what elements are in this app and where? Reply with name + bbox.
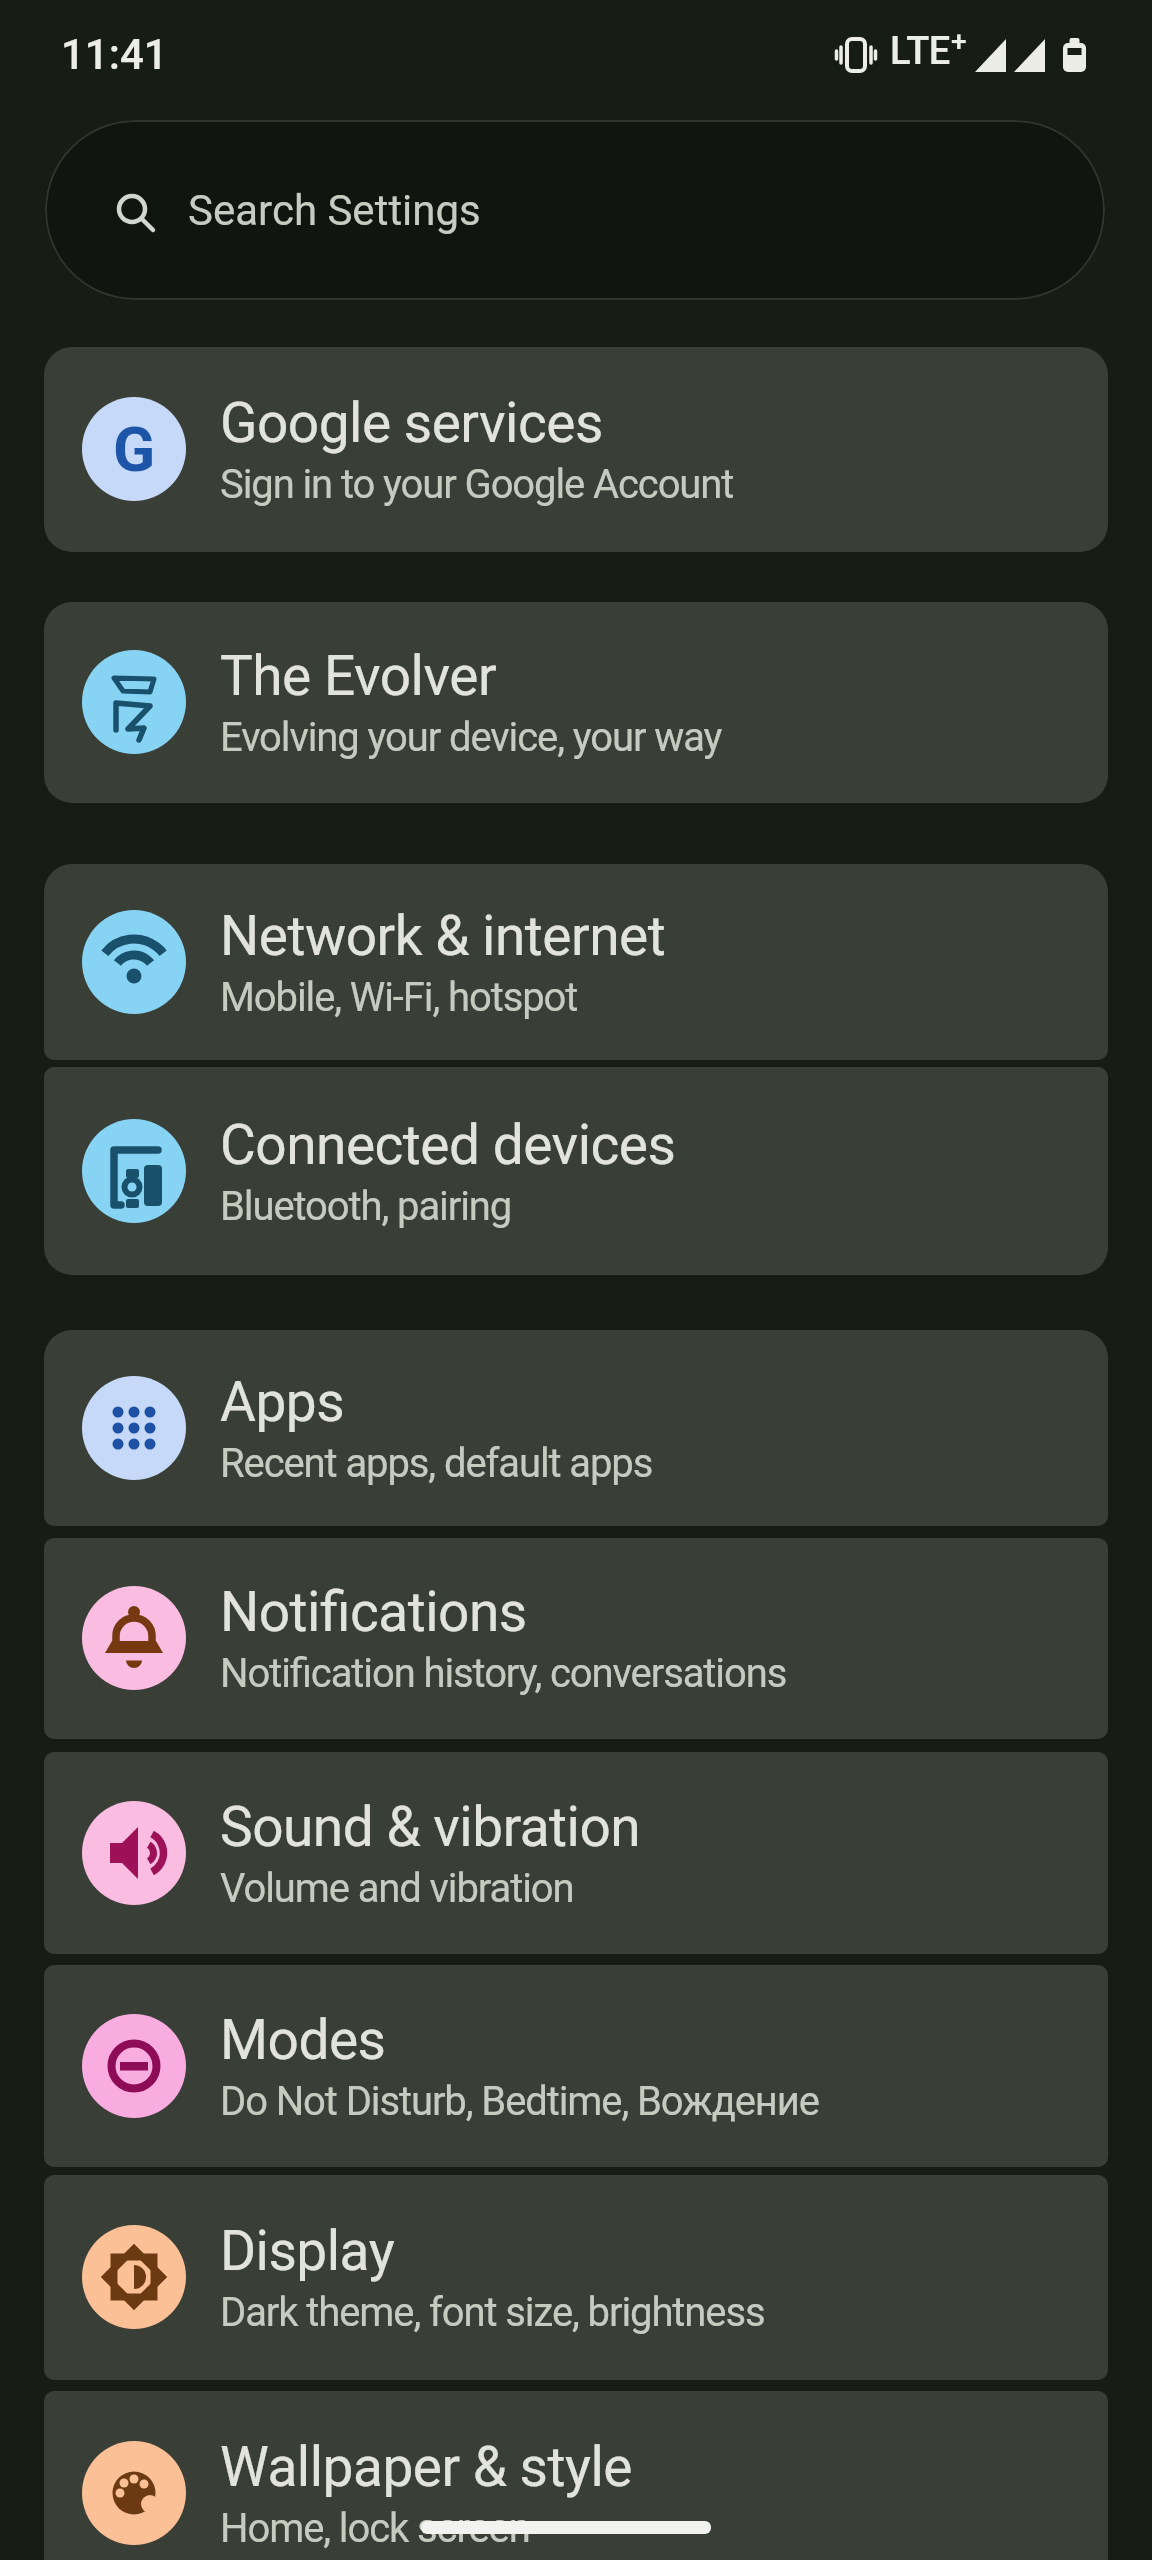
- button[interactable]: Sound & vibration: [44, 1752, 1108, 1954]
- button[interactable]: Network & internet: [44, 864, 1108, 1060]
- button[interactable]: [421, 2521, 711, 2534]
- staticText: Volume and vibration: [220, 1865, 574, 1912]
- button[interactable]: Search Settings: [45, 120, 1105, 300]
- button[interactable]: Connected devices: [44, 1067, 1108, 1275]
- staticText: The Evolver: [220, 644, 497, 708]
- staticText: Google services: [220, 391, 603, 455]
- staticText: Modes: [220, 2008, 386, 2072]
- staticText: Notification history, conversations: [220, 1650, 787, 1697]
- staticText: Display: [220, 2219, 395, 2283]
- staticText: Dark theme, font size, brightness: [220, 2289, 765, 2336]
- staticText: Mobile, Wi-Fi, hotspot: [220, 974, 578, 1021]
- staticText: Connected devices: [220, 1113, 676, 1177]
- staticText: 11:41: [61, 30, 168, 79]
- staticText: Notifications: [220, 1580, 527, 1644]
- staticText: G: [113, 413, 156, 486]
- button[interactable]: Apps: [44, 1330, 1108, 1526]
- staticText: Network & internet: [220, 904, 666, 968]
- button[interactable]: Wallpaper & style: [44, 2391, 1108, 2560]
- button[interactable]: Notifications: [44, 1538, 1108, 1739]
- staticText: Sign in to your Google Account: [220, 461, 734, 508]
- staticText: Recent apps, default apps: [220, 1440, 653, 1487]
- staticText: Bluetooth, pairing: [220, 1183, 512, 1230]
- button[interactable]: G: [44, 347, 1108, 552]
- staticText: Wallpaper & style: [220, 2435, 633, 2499]
- button[interactable]: The Evolver: [44, 602, 1108, 803]
- button[interactable]: Display: [44, 2175, 1108, 2380]
- staticText: Search Settings: [188, 186, 481, 235]
- staticText: Apps: [220, 1370, 345, 1434]
- staticText: Sound & vibration: [220, 1795, 641, 1859]
- staticText: LTE: [890, 29, 950, 74]
- staticText: Evolving your device, your way: [220, 714, 722, 761]
- button[interactable]: Modes: [44, 1965, 1108, 2167]
- staticText: +: [951, 25, 967, 58]
- staticText: Home, lock screen: [220, 2505, 530, 2552]
- staticText: Do Not Disturb, Bedtime, Вождение: [220, 2078, 819, 2125]
